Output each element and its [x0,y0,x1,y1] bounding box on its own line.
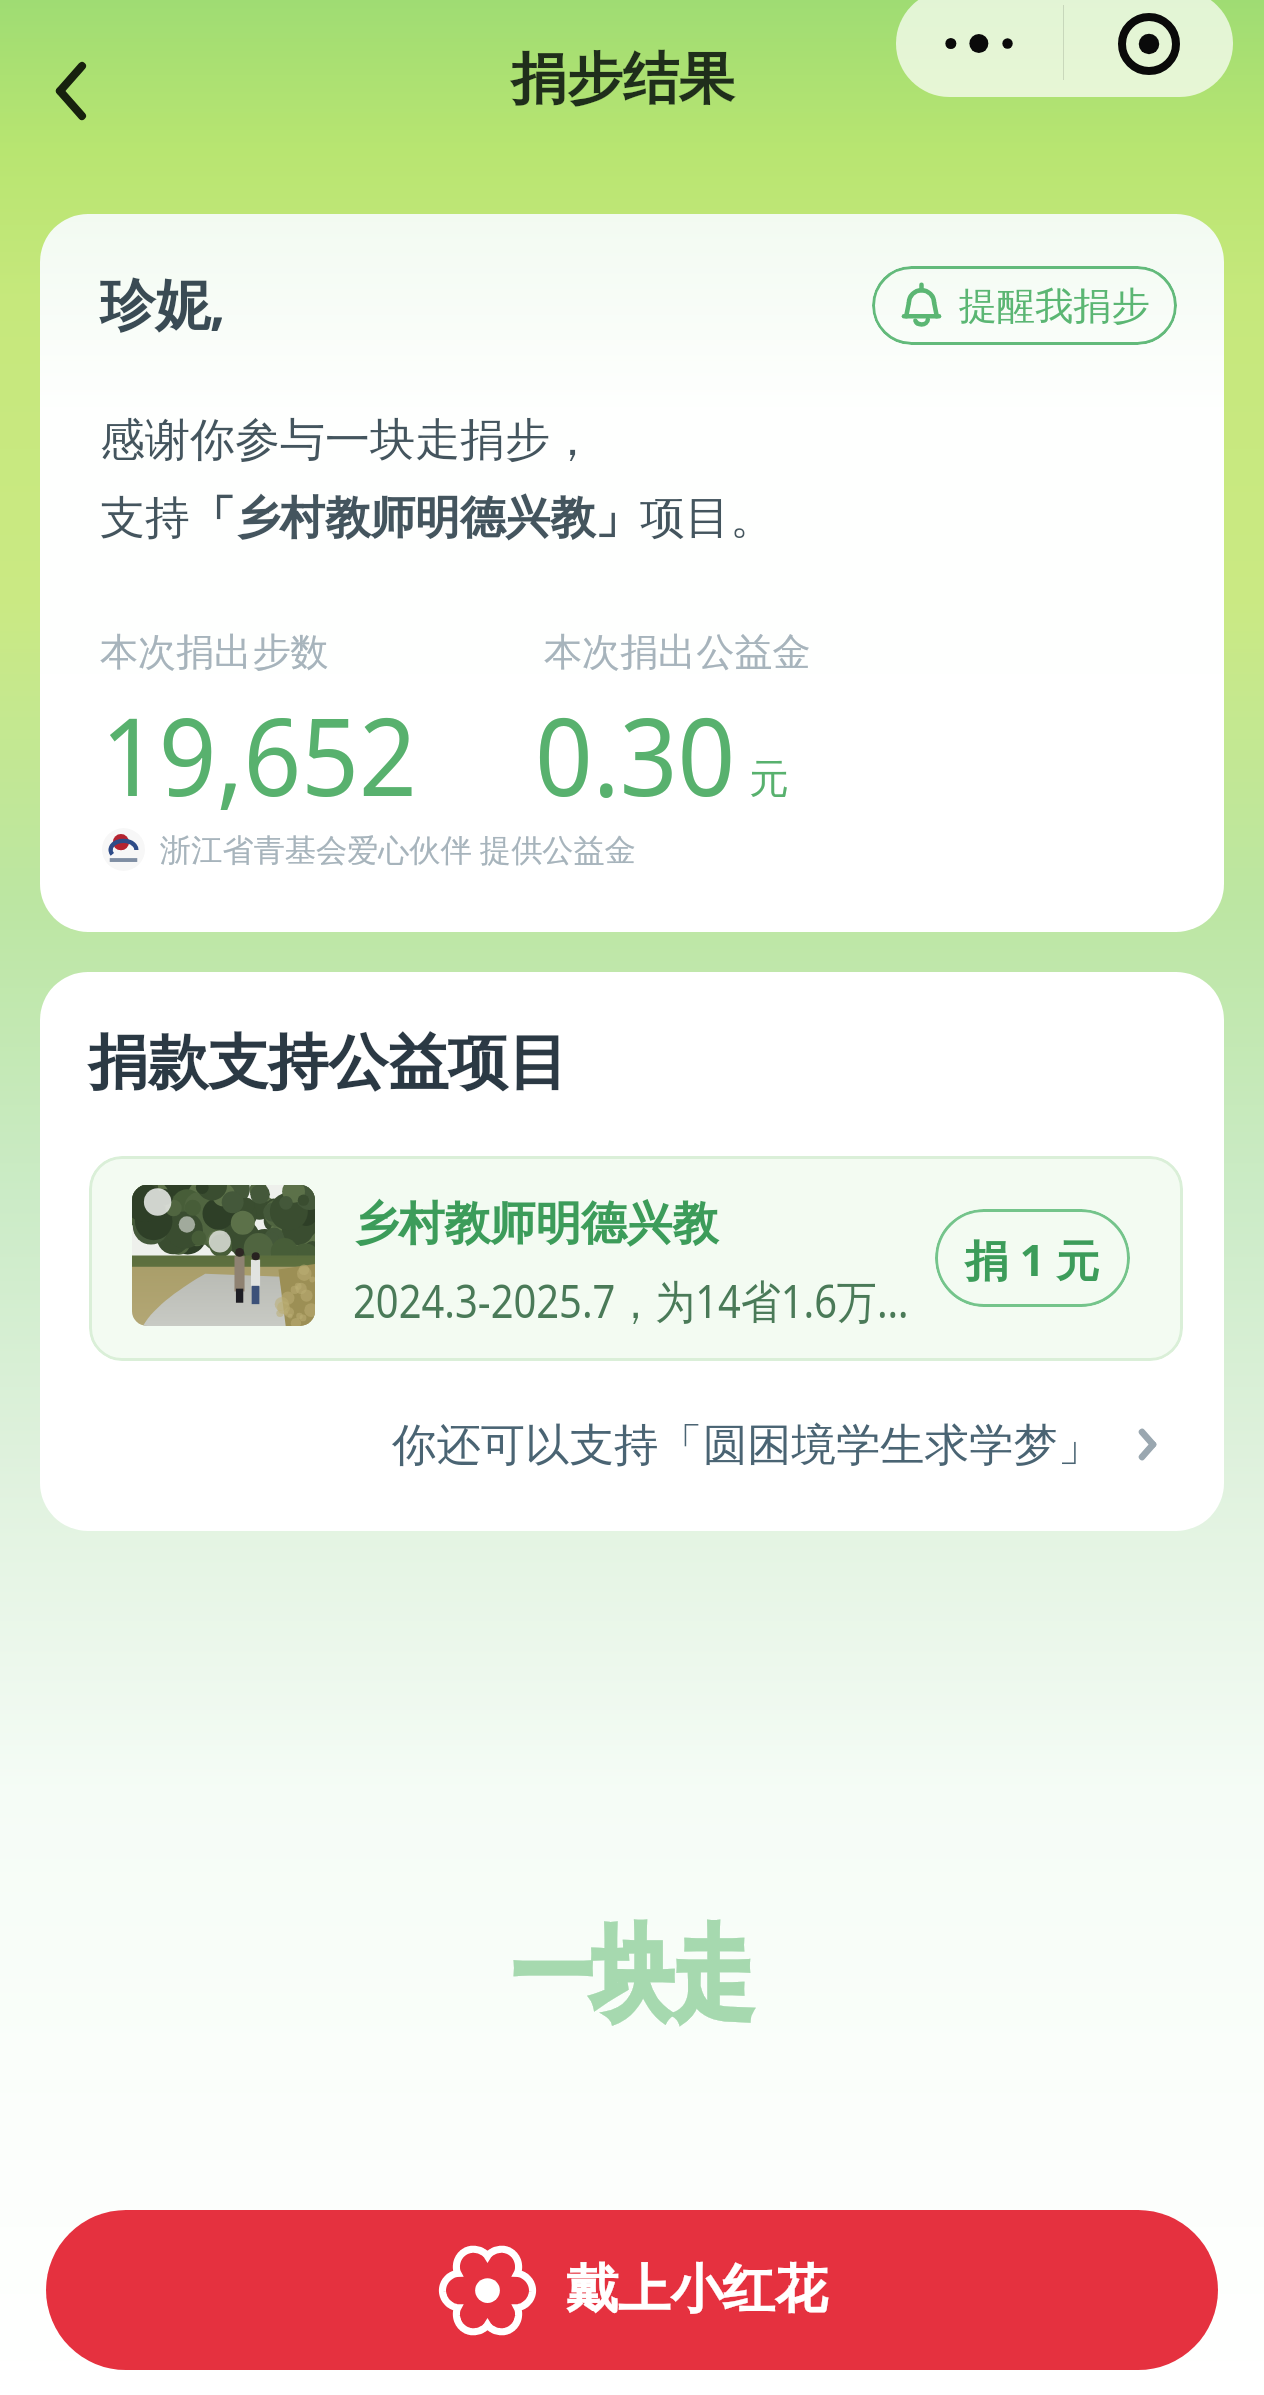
staticText: 捐 1 元 [965,1229,1100,1288]
button[interactable]: More options [896,0,1063,97]
staticText: 元 [749,754,789,804]
staticText: 捐步结果 [511,44,735,114]
staticText: 珍妮, [100,265,226,340]
button[interactable]: 乡村教师明德兴教 [89,1156,1183,1361]
button[interactable]: 捐 1 元 [935,1209,1130,1307]
staticText: 提醒我捐步 [959,282,1150,330]
staticText: 支持 [100,490,190,547]
button[interactable]: 你还可以支持「圆困境学生求学梦」 [392,1395,1153,1494]
button[interactable]: 戴上小红花 [46,2210,1218,2370]
staticText: 捐款支持公益项目 [88,1025,568,1101]
staticText: 乡村教师明德兴教 [353,1195,718,1252]
button[interactable]: Close mini program [1064,0,1233,97]
staticText: 你还可以支持「圆困境学生求学梦」 [392,1417,1103,1473]
staticText: 感谢你参与一块走捐步， [100,412,595,469]
staticText: 19,652 [101,681,417,828]
staticText: 戴上小红花 [566,2257,827,2323]
staticText: 本次捐出公益金 [544,628,811,676]
button[interactable]: Back [8,28,134,154]
staticText: 项目。 [640,490,775,547]
staticText: 0.30 [535,681,736,828]
button[interactable]: 提醒我捐步 [872,266,1177,345]
staticText: 本次捐出步数 [100,628,329,676]
staticText: 浙江省青基会爱心伙伴 提供公益金 [160,828,636,871]
staticText: 「乡村教师明德兴教」 [190,490,640,547]
staticText: 2024.3-2025.7，为14省1.6万… [353,1269,909,1331]
staticText: 一块走 [511,1911,753,2040]
